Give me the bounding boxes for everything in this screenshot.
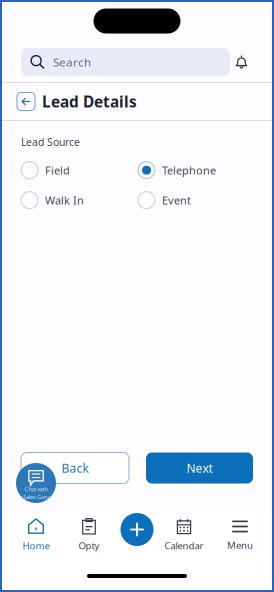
staticText: Calendar xyxy=(164,539,203,552)
button[interactable]: Back xyxy=(21,452,129,483)
staticText: Field xyxy=(45,163,70,178)
button[interactable]: Walk In xyxy=(21,189,125,211)
button[interactable]: Next xyxy=(146,452,253,483)
button[interactable]: Calendar xyxy=(157,514,210,556)
staticText: Chat with xyxy=(24,485,47,493)
staticText: Lead Source xyxy=(21,135,80,149)
button[interactable]: Event xyxy=(138,189,242,211)
staticText: Lead Details xyxy=(42,91,137,112)
button[interactable]: Chat with xyxy=(16,463,56,503)
button[interactable]: Search xyxy=(21,48,230,76)
staticText: Search xyxy=(53,54,91,70)
staticText: Back xyxy=(61,460,88,476)
staticText: Opty xyxy=(78,539,99,552)
button[interactable]: Create new xyxy=(120,513,153,546)
button[interactable]: Notifications xyxy=(230,48,253,76)
button[interactable]: Back xyxy=(17,92,35,110)
button[interactable]: Telephone xyxy=(138,159,242,181)
staticText: Event xyxy=(162,193,191,208)
staticText: Menu xyxy=(227,538,253,552)
staticText: Sales Guru xyxy=(23,493,49,501)
staticText: Next xyxy=(186,460,212,476)
staticText: Telephone xyxy=(162,163,216,178)
button[interactable]: Home xyxy=(9,514,62,556)
button[interactable]: Menu xyxy=(213,514,266,556)
staticText: Home xyxy=(22,539,49,552)
staticText: Walk In xyxy=(45,193,84,208)
button[interactable]: Opty xyxy=(62,514,115,556)
button[interactable]: Field xyxy=(21,159,125,181)
